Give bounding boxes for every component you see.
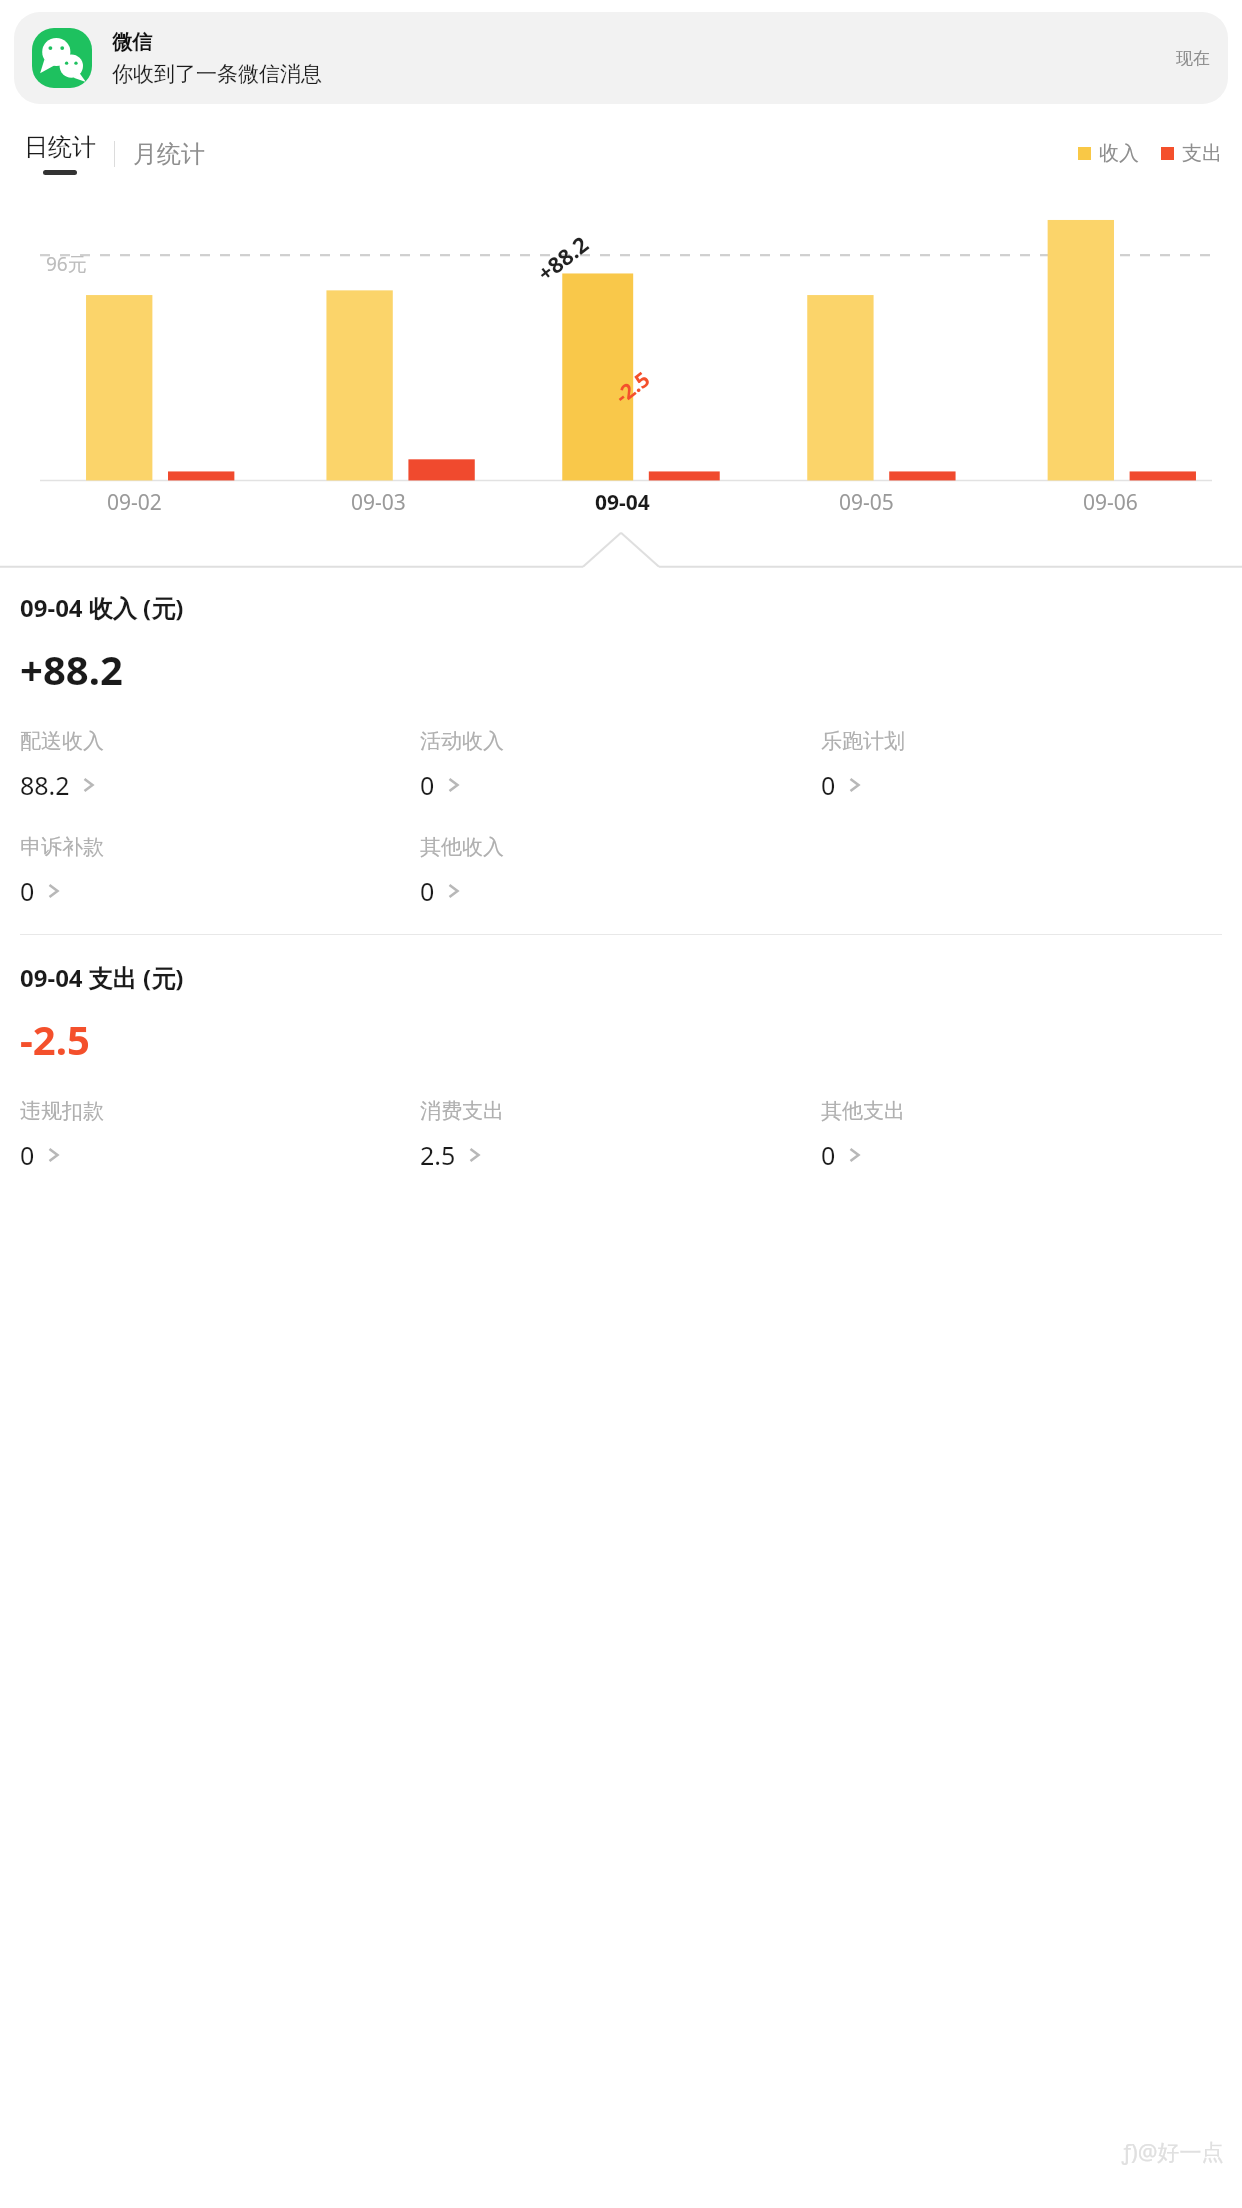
staticText: 0 [821, 768, 836, 802]
staticText: 09-06 [1083, 488, 1138, 517]
other: Watermark [1122, 2136, 1224, 2166]
button[interactable]: 申诉补款 [20, 830, 420, 912]
staticText: 09-05 [839, 488, 894, 517]
button[interactable]: 活动收入 [420, 724, 821, 806]
button[interactable]: 09-04 [500, 488, 744, 517]
staticText: 活动收入 [420, 728, 504, 754]
staticText: +88.2 [531, 229, 594, 287]
staticText: ƒ)@好一点 [1122, 2136, 1224, 2166]
staticText: 乐跑计划 [821, 728, 905, 754]
staticText: 其他收入 [420, 834, 504, 860]
button[interactable]: 09-05 [744, 488, 988, 517]
button[interactable]: 违规扣款 [20, 1094, 420, 1176]
button[interactable]: 月统计 [129, 137, 209, 171]
button[interactable]: 日统计 [20, 130, 100, 177]
button[interactable]: 配送收入 [20, 724, 420, 806]
button[interactable]: 09-02 [13, 488, 256, 517]
staticText: 96元 [46, 251, 87, 277]
button[interactable]: 09-06 [988, 488, 1232, 517]
staticText: 收入 [1099, 141, 1139, 166]
staticText: 09-03 [351, 488, 406, 517]
staticText: 配送收入 [20, 728, 104, 754]
button[interactable]: 微信 [14, 12, 1228, 104]
staticText: 月统计 [133, 139, 205, 169]
staticText: 0 [821, 1138, 836, 1172]
staticText: 微信 [112, 30, 152, 55]
staticText: 支出 [1182, 141, 1222, 166]
staticText: 0 [20, 874, 35, 908]
staticText: 消费支出 [420, 1098, 504, 1124]
button[interactable]: 其他支出 [821, 1094, 1222, 1176]
button[interactable]: 乐跑计划 [821, 724, 1222, 806]
staticText: 09-02 [107, 488, 162, 517]
staticText: 日统计 [24, 132, 96, 162]
staticText: -2.5 [20, 1012, 90, 1066]
staticText: 09-04 支出 (元) [20, 961, 184, 994]
staticText: 违规扣款 [20, 1098, 104, 1124]
button[interactable]: 其他收入 [420, 830, 821, 912]
staticText: 2.5 [420, 1138, 456, 1172]
staticText: 09-04 [595, 488, 650, 517]
staticText: 你收到了一条微信消息 [112, 61, 322, 87]
staticText: 0 [20, 1138, 35, 1172]
staticText: -2.5 [609, 365, 656, 410]
button[interactable]: 09-03 [256, 488, 500, 517]
staticText: 0 [420, 874, 435, 908]
button[interactable]: 消费支出 [420, 1094, 821, 1176]
staticText: 其他支出 [821, 1098, 905, 1124]
staticText: 88.2 [20, 768, 70, 802]
staticText: +88.2 [20, 642, 123, 696]
staticText: 现在 [1176, 48, 1210, 69]
staticText: 申诉补款 [20, 834, 104, 860]
staticText: 0 [420, 768, 435, 802]
staticText: 09-04 收入 (元) [20, 591, 184, 624]
